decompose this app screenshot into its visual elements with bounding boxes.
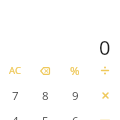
button[interactable]: %: [60, 58, 90, 83]
staticText: 7: [12, 88, 19, 104]
staticText: %: [70, 63, 80, 79]
staticText: 4: [12, 113, 19, 120]
other: Backspace: [40, 67, 50, 75]
other: Multiply: [102, 92, 109, 99]
staticText: 0: [99, 34, 111, 61]
staticText: 9: [72, 88, 79, 104]
button[interactable]: AC: [0, 58, 30, 83]
button[interactable]: 4: [0, 108, 30, 120]
button[interactable]: 6: [60, 108, 90, 120]
staticText: 5: [42, 113, 49, 120]
button[interactable]: Backspace: [30, 58, 60, 83]
other: Minus: [100, 116, 110, 120]
button[interactable]: 9: [60, 83, 90, 108]
staticText: AC: [9, 64, 21, 77]
button[interactable]: 5: [30, 108, 60, 120]
button[interactable]: 7: [0, 83, 30, 108]
other: Divide: [101, 66, 109, 75]
button[interactable]: Minus: [90, 108, 120, 120]
staticText: 8: [42, 88, 49, 104]
button[interactable]: Multiply: [90, 83, 120, 108]
button[interactable]: Divide: [90, 58, 120, 83]
button[interactable]: 0: [0, 0, 111, 58]
staticText: 6: [72, 113, 79, 120]
button[interactable]: 8: [30, 83, 60, 108]
